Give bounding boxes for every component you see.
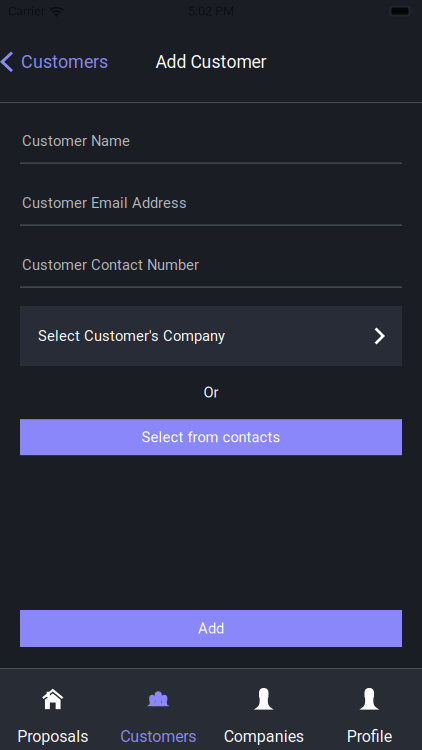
staticText: Companies	[224, 727, 304, 746]
staticText: Customers	[120, 727, 196, 746]
staticText: Add Customer	[155, 52, 266, 72]
staticText: Carrier	[8, 3, 45, 18]
staticText: Customer Name	[22, 132, 130, 150]
staticText: Customers	[21, 51, 108, 72]
staticText: Select Customer's Company	[38, 327, 225, 345]
staticText: Profile	[347, 727, 392, 746]
button[interactable]: Profile	[316, 673, 422, 746]
button[interactable]: Proposals	[0, 673, 105, 746]
staticText: Select from contacts	[141, 429, 280, 446]
button[interactable]: Add	[20, 610, 402, 647]
staticText: Or	[203, 384, 218, 401]
button[interactable]: Customers	[0, 22, 118, 102]
button[interactable]: Select from contacts	[20, 419, 402, 455]
button[interactable]: Customers	[105, 673, 211, 746]
button[interactable]: Select Customer's Company	[20, 306, 402, 366]
staticText: Proposals	[17, 727, 88, 746]
button[interactable]: Companies	[211, 673, 316, 746]
staticText: Add	[198, 620, 224, 637]
staticText: 5:02 PM	[188, 3, 234, 18]
staticText: Customer Contact Number	[22, 256, 199, 274]
staticText: Customer Email Address	[22, 194, 187, 212]
